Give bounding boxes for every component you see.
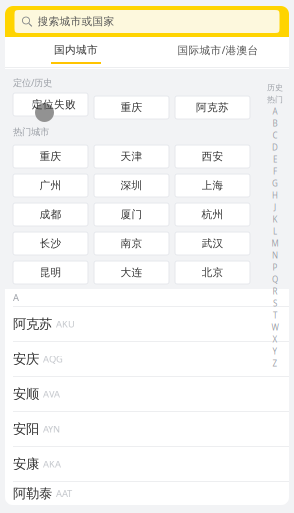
button[interactable]: R [263, 285, 287, 297]
staticText: AQG [39, 353, 63, 365]
button[interactable]: 热门 [263, 93, 287, 105]
button[interactable]: S [263, 297, 287, 309]
button[interactable]: 阿克苏 [5, 307, 289, 342]
staticText: Y [272, 346, 277, 357]
button[interactable]: T [263, 309, 287, 321]
button[interactable]: 国内城市 [5, 38, 147, 62]
staticText: 广州 [39, 179, 61, 192]
staticText: 安阳 [13, 421, 39, 437]
button[interactable]: 北京 [175, 261, 250, 284]
staticText: R [272, 286, 277, 297]
button[interactable]: 武汉 [175, 232, 250, 255]
button[interactable]: L [263, 225, 287, 237]
staticText: C [272, 130, 277, 141]
button[interactable]: H [263, 189, 287, 201]
staticText: H [272, 190, 278, 201]
staticText: B [272, 118, 277, 129]
staticText: 定位/历史 [13, 76, 52, 89]
button[interactable]: F [263, 165, 287, 177]
button[interactable]: 西安 [175, 145, 250, 168]
staticText: 国际城市/港澳台 [177, 43, 258, 57]
button[interactable]: 深圳 [94, 174, 169, 197]
staticText: S [273, 298, 277, 309]
staticText: 阿克苏 [196, 101, 229, 114]
button[interactable]: 广州 [13, 174, 88, 197]
button[interactable]: P [263, 261, 287, 273]
staticText: A [272, 106, 277, 117]
button[interactable]: 厦门 [94, 203, 169, 226]
button[interactable]: D [263, 141, 287, 153]
staticText: 成都 [39, 208, 61, 221]
staticText: W [271, 322, 278, 333]
staticText: K [272, 214, 277, 225]
button[interactable]: E [263, 153, 287, 165]
button[interactable]: 阿克苏 [175, 96, 250, 119]
staticText: 热门城市 [13, 126, 49, 138]
staticText: L [273, 226, 277, 237]
button[interactable]: X [263, 333, 287, 345]
staticText: A [13, 291, 19, 304]
staticText: E [273, 154, 277, 165]
staticText: AKA [39, 458, 61, 470]
staticText: 杭州 [201, 208, 223, 221]
button[interactable]: 杭州 [175, 203, 250, 226]
button[interactable]: Y [263, 345, 287, 357]
staticText: N [272, 250, 278, 261]
button[interactable]: 天津 [94, 145, 169, 168]
button[interactable]: Q [263, 273, 287, 285]
staticText: 搜索城市或国家 [37, 15, 114, 28]
button[interactable]: 上海 [175, 174, 250, 197]
staticText: 定位失败 [32, 98, 76, 111]
staticText: 深圳 [120, 179, 142, 192]
button[interactable]: C [263, 129, 287, 141]
staticText: 热门 [267, 95, 283, 104]
staticText: 大连 [120, 266, 142, 279]
staticText: 天津 [120, 150, 142, 163]
staticText: G [272, 178, 278, 189]
staticText: 西安 [201, 150, 223, 163]
button[interactable]: 重庆 [13, 145, 88, 168]
staticText: T [273, 310, 277, 321]
button[interactable]: 重庆 [94, 96, 169, 119]
staticText: AYN [39, 423, 60, 435]
staticText: D [272, 142, 278, 153]
button[interactable]: A [263, 105, 287, 117]
staticText: Z [272, 358, 277, 369]
staticText: 阿勒泰 [13, 485, 52, 502]
button[interactable]: 国际城市/港澳台 [147, 38, 289, 62]
button[interactable]: M [263, 237, 287, 249]
staticText: 北京 [201, 266, 223, 279]
button[interactable]: N [263, 249, 287, 261]
staticText: 阿克苏 [13, 316, 52, 332]
staticText: 上海 [201, 179, 223, 192]
staticText: 安庆 [13, 351, 39, 367]
button[interactable]: B [263, 117, 287, 129]
button[interactable]: J [263, 201, 287, 213]
button[interactable]: 成都 [13, 203, 88, 226]
staticText: J [274, 202, 276, 213]
button[interactable]: 大连 [94, 261, 169, 284]
button[interactable]: 定位失败 [13, 96, 88, 119]
button[interactable]: 安康 [5, 447, 289, 482]
staticText: F [273, 166, 277, 177]
button[interactable]: Z [263, 357, 287, 369]
button[interactable]: W [263, 321, 287, 333]
staticText: 重庆 [39, 150, 61, 163]
button[interactable]: 历史 [263, 81, 287, 93]
staticText: 厦门 [120, 208, 142, 221]
button[interactable]: 安庆 [5, 342, 289, 377]
staticText: P [272, 262, 277, 273]
staticText: AAT [52, 487, 72, 500]
button[interactable]: K [263, 213, 287, 225]
button[interactable]: 阿勒泰 [5, 482, 289, 506]
button[interactable]: 安阳 [5, 412, 289, 447]
button[interactable]: 安顺 [5, 377, 289, 412]
staticText: 安顺 [13, 386, 39, 402]
staticText: 南京 [120, 237, 142, 250]
button[interactable]: G [263, 177, 287, 189]
button[interactable]: 南京 [94, 232, 169, 255]
staticText: 重庆 [120, 101, 142, 114]
staticText: X [272, 334, 277, 345]
button[interactable]: 昆明 [13, 261, 88, 284]
button[interactable]: 长沙 [13, 232, 88, 255]
